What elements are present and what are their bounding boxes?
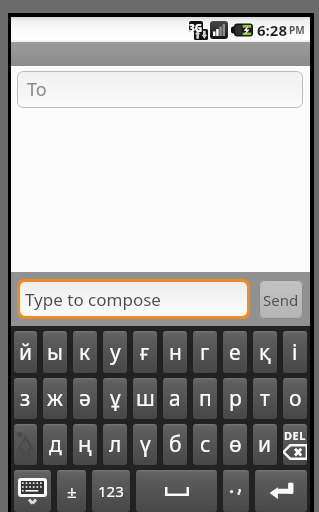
button[interactable]: Keyboard settings <box>14 470 51 512</box>
staticText: ш <box>136 384 155 413</box>
staticText: й <box>19 338 33 367</box>
button[interactable]: Period and comma <box>223 470 249 512</box>
staticText: г <box>200 338 210 367</box>
staticText: а <box>169 384 181 413</box>
staticText: 6:28 <box>257 20 287 40</box>
staticText: PM <box>289 23 305 37</box>
button[interactable]: о <box>283 378 307 419</box>
staticText: ± <box>67 480 77 503</box>
button[interactable]: і <box>283 331 307 373</box>
button[interactable]: а <box>163 378 187 419</box>
button[interactable]: Space <box>136 470 217 512</box>
button[interactable]: с <box>193 424 217 465</box>
button[interactable]: п <box>193 378 217 419</box>
staticText: Type to compose <box>25 288 161 311</box>
button[interactable]: н <box>163 331 187 373</box>
staticText: қ <box>259 338 271 367</box>
staticText: ө <box>229 430 242 459</box>
staticText: DEL <box>284 428 306 443</box>
staticText: с <box>200 430 211 459</box>
button[interactable]: г <box>193 331 217 373</box>
button[interactable]: To <box>17 71 303 108</box>
button[interactable]: қ <box>253 331 277 373</box>
staticText: 123 <box>98 481 124 501</box>
button[interactable]: л <box>103 424 127 465</box>
button[interactable]: ө <box>223 424 247 465</box>
staticText: д <box>49 430 62 459</box>
staticText: ұ <box>110 384 121 413</box>
button[interactable]: Enter <box>255 470 307 512</box>
staticText: ң <box>78 430 92 459</box>
staticText: ж <box>47 384 63 413</box>
staticText: и <box>258 430 272 459</box>
staticText: ә <box>79 384 91 413</box>
staticText: б <box>169 430 182 459</box>
staticText: е <box>229 338 241 367</box>
button[interactable]: ш <box>133 378 157 419</box>
button[interactable]: у <box>103 331 127 373</box>
button[interactable]: ә <box>73 378 97 419</box>
staticText: To <box>27 77 47 102</box>
staticText: ы <box>47 338 63 367</box>
button[interactable]: ү <box>133 424 157 465</box>
button[interactable]: з <box>14 378 37 419</box>
button[interactable]: Type to compose <box>20 282 247 316</box>
button[interactable]: ы <box>43 331 67 373</box>
button[interactable]: Send <box>259 280 303 319</box>
button[interactable]: ғ <box>133 331 157 373</box>
button[interactable]: к <box>73 331 97 373</box>
button[interactable]: и <box>253 424 277 465</box>
staticText: н <box>169 338 182 367</box>
button[interactable]: й <box>14 331 37 373</box>
staticText: т <box>260 384 270 413</box>
button[interactable]: д <box>43 424 67 465</box>
button[interactable]: ж <box>43 378 67 419</box>
staticText: у <box>110 338 121 367</box>
staticText: Send <box>263 290 299 310</box>
button[interactable]: ұ <box>103 378 127 419</box>
button[interactable]: ± <box>57 470 86 512</box>
staticText: п <box>199 384 212 413</box>
staticText: р <box>229 384 242 413</box>
staticText: л <box>109 430 122 459</box>
staticText: і <box>292 338 298 367</box>
button[interactable]: т <box>253 378 277 419</box>
staticText: ғ <box>140 338 150 367</box>
staticText: 3G <box>189 21 203 32</box>
staticText: к <box>79 338 91 367</box>
staticText: з <box>20 384 31 413</box>
staticText: о <box>289 384 302 413</box>
button[interactable]: р <box>223 378 247 419</box>
button[interactable]: Shift <box>14 424 37 465</box>
button[interactable]: ң <box>73 424 97 465</box>
staticText: ү <box>140 430 151 459</box>
button[interactable]: 123 <box>92 470 130 512</box>
button[interactable]: Delete <box>283 424 307 465</box>
button[interactable]: б <box>163 424 187 465</box>
button[interactable]: е <box>223 331 247 373</box>
